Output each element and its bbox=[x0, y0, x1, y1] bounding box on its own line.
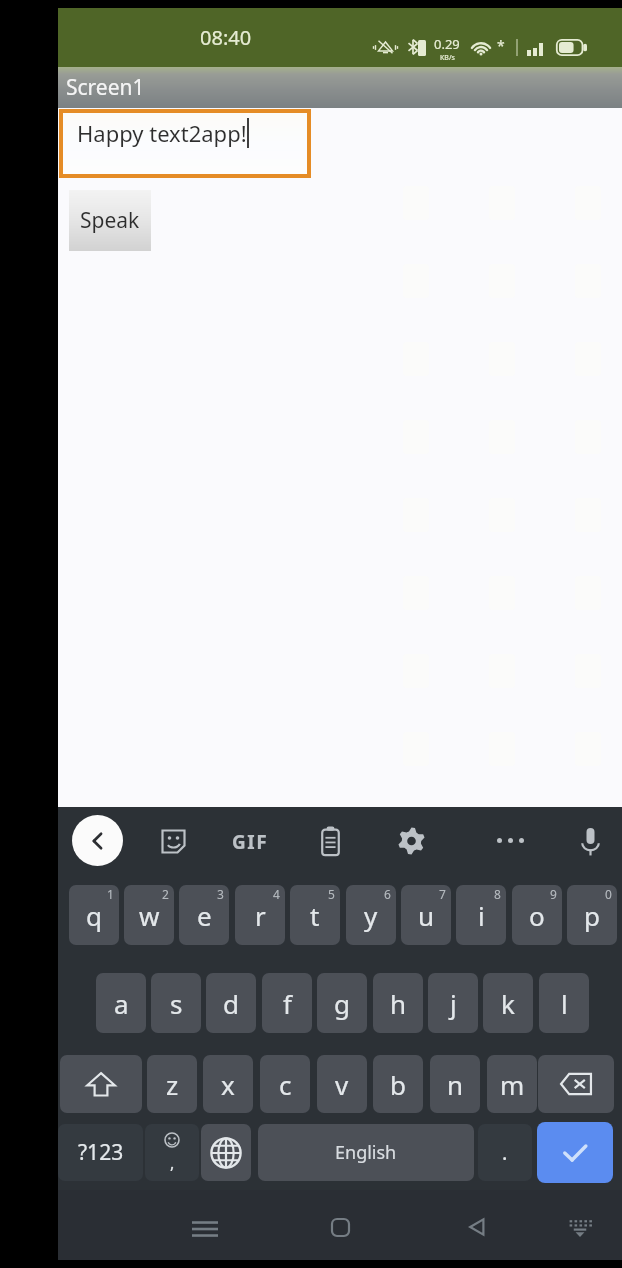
staticText: j bbox=[450, 986, 457, 1021]
button[interactable]: d bbox=[206, 973, 256, 1033]
button[interactable]: Speak bbox=[69, 190, 151, 251]
staticText: Happy text2app! bbox=[77, 118, 247, 148]
button[interactable]: GIF bbox=[223, 828, 277, 856]
button[interactable]: a bbox=[96, 973, 146, 1033]
button[interactable]: Settings bbox=[398, 827, 425, 855]
button[interactable]: . bbox=[478, 1124, 532, 1181]
button[interactable]: Recents bbox=[184, 1206, 226, 1248]
staticText: 6 bbox=[384, 886, 391, 902]
button[interactable]: Close keyboard bbox=[72, 815, 123, 866]
button[interactable]: f bbox=[262, 973, 312, 1033]
staticText: 7 bbox=[439, 886, 446, 902]
button[interactable]: Emoji bbox=[145, 1124, 199, 1181]
staticText: y bbox=[364, 898, 378, 933]
staticText: English bbox=[335, 1140, 397, 1165]
button[interactable]: Hide keyboard bbox=[559, 1206, 601, 1248]
staticText: q bbox=[86, 898, 102, 933]
button[interactable]: Stickers bbox=[161, 829, 186, 854]
staticText: v bbox=[335, 1067, 349, 1102]
button[interactable]: b bbox=[373, 1055, 423, 1113]
button[interactable]: h bbox=[373, 973, 423, 1033]
staticText: 8 bbox=[494, 886, 501, 902]
staticText: . bbox=[502, 1139, 508, 1166]
staticText: 9 bbox=[550, 886, 557, 902]
staticText: KB/s bbox=[440, 53, 455, 61]
button[interactable]: z bbox=[147, 1055, 197, 1113]
button[interactable]: t bbox=[290, 885, 340, 945]
staticText: u bbox=[418, 898, 435, 933]
button[interactable]: Happy text2app! bbox=[63, 113, 307, 174]
staticText: x bbox=[221, 1067, 235, 1102]
button[interactable]: More options bbox=[492, 834, 528, 846]
staticText: 5 bbox=[328, 886, 335, 902]
staticText: i bbox=[478, 898, 485, 933]
button[interactable]: Backspace bbox=[538, 1055, 614, 1113]
button[interactable]: s bbox=[151, 973, 201, 1033]
staticText: k bbox=[501, 986, 515, 1021]
staticText: d bbox=[223, 986, 239, 1021]
button[interactable]: Change language bbox=[201, 1124, 251, 1181]
button[interactable]: v bbox=[317, 1055, 367, 1113]
staticText: h bbox=[390, 986, 407, 1021]
staticText: m bbox=[500, 1067, 525, 1102]
button[interactable]: e bbox=[179, 885, 229, 945]
staticText: t bbox=[310, 898, 320, 933]
staticText: Speak bbox=[80, 206, 140, 235]
button[interactable]: Clipboard bbox=[319, 826, 342, 857]
button[interactable]: English bbox=[258, 1124, 474, 1181]
button[interactable]: g bbox=[317, 973, 367, 1033]
staticText: 1 bbox=[107, 886, 114, 902]
button[interactable]: Home bbox=[319, 1206, 361, 1248]
button[interactable]: q bbox=[69, 885, 119, 945]
staticText: a bbox=[114, 986, 129, 1021]
staticText: n bbox=[447, 1067, 464, 1102]
staticText: z bbox=[166, 1067, 179, 1102]
staticText: f bbox=[283, 986, 292, 1021]
button[interactable]: ?123 bbox=[58, 1124, 143, 1181]
button[interactable]: l bbox=[539, 973, 589, 1033]
button[interactable]: j bbox=[428, 973, 478, 1033]
button[interactable]: n bbox=[430, 1055, 480, 1113]
staticText: 0 bbox=[605, 886, 612, 902]
staticText: ?123 bbox=[78, 1138, 124, 1167]
staticText: 08:40 bbox=[200, 24, 252, 51]
staticText: 0.29 bbox=[434, 35, 460, 53]
staticText: e bbox=[197, 898, 212, 933]
staticText: w bbox=[139, 898, 160, 933]
button[interactable]: u bbox=[401, 885, 451, 945]
staticText: , bbox=[170, 1152, 175, 1174]
button[interactable]: Back bbox=[456, 1206, 498, 1248]
staticText: s bbox=[170, 986, 183, 1021]
button[interactable]: Voice input bbox=[578, 826, 603, 858]
staticText: l bbox=[561, 986, 568, 1021]
button[interactable]: r bbox=[235, 885, 285, 945]
button[interactable]: p bbox=[567, 885, 617, 945]
staticText: p bbox=[584, 898, 600, 933]
staticText: c bbox=[279, 1067, 292, 1102]
staticText: 3 bbox=[217, 886, 224, 902]
staticText: 4 bbox=[273, 886, 280, 902]
staticText: 2 bbox=[162, 886, 169, 902]
button[interactable]: w bbox=[124, 885, 174, 945]
staticText: b bbox=[390, 1067, 406, 1102]
staticText: g bbox=[334, 986, 350, 1021]
button[interactable]: y bbox=[346, 885, 396, 945]
staticText: o bbox=[529, 898, 545, 933]
button[interactable]: Shift bbox=[60, 1055, 142, 1113]
button[interactable]: c bbox=[260, 1055, 310, 1113]
button[interactable]: k bbox=[483, 973, 533, 1033]
staticText: r bbox=[255, 898, 266, 933]
staticText: Screen1 bbox=[66, 73, 145, 102]
button[interactable]: Enter bbox=[537, 1122, 613, 1183]
staticText: GIF bbox=[232, 829, 269, 855]
button[interactable]: o bbox=[512, 885, 562, 945]
button[interactable]: x bbox=[203, 1055, 253, 1113]
button[interactable]: m bbox=[487, 1055, 537, 1113]
staticText: * bbox=[497, 36, 505, 52]
button[interactable]: i bbox=[456, 885, 506, 945]
